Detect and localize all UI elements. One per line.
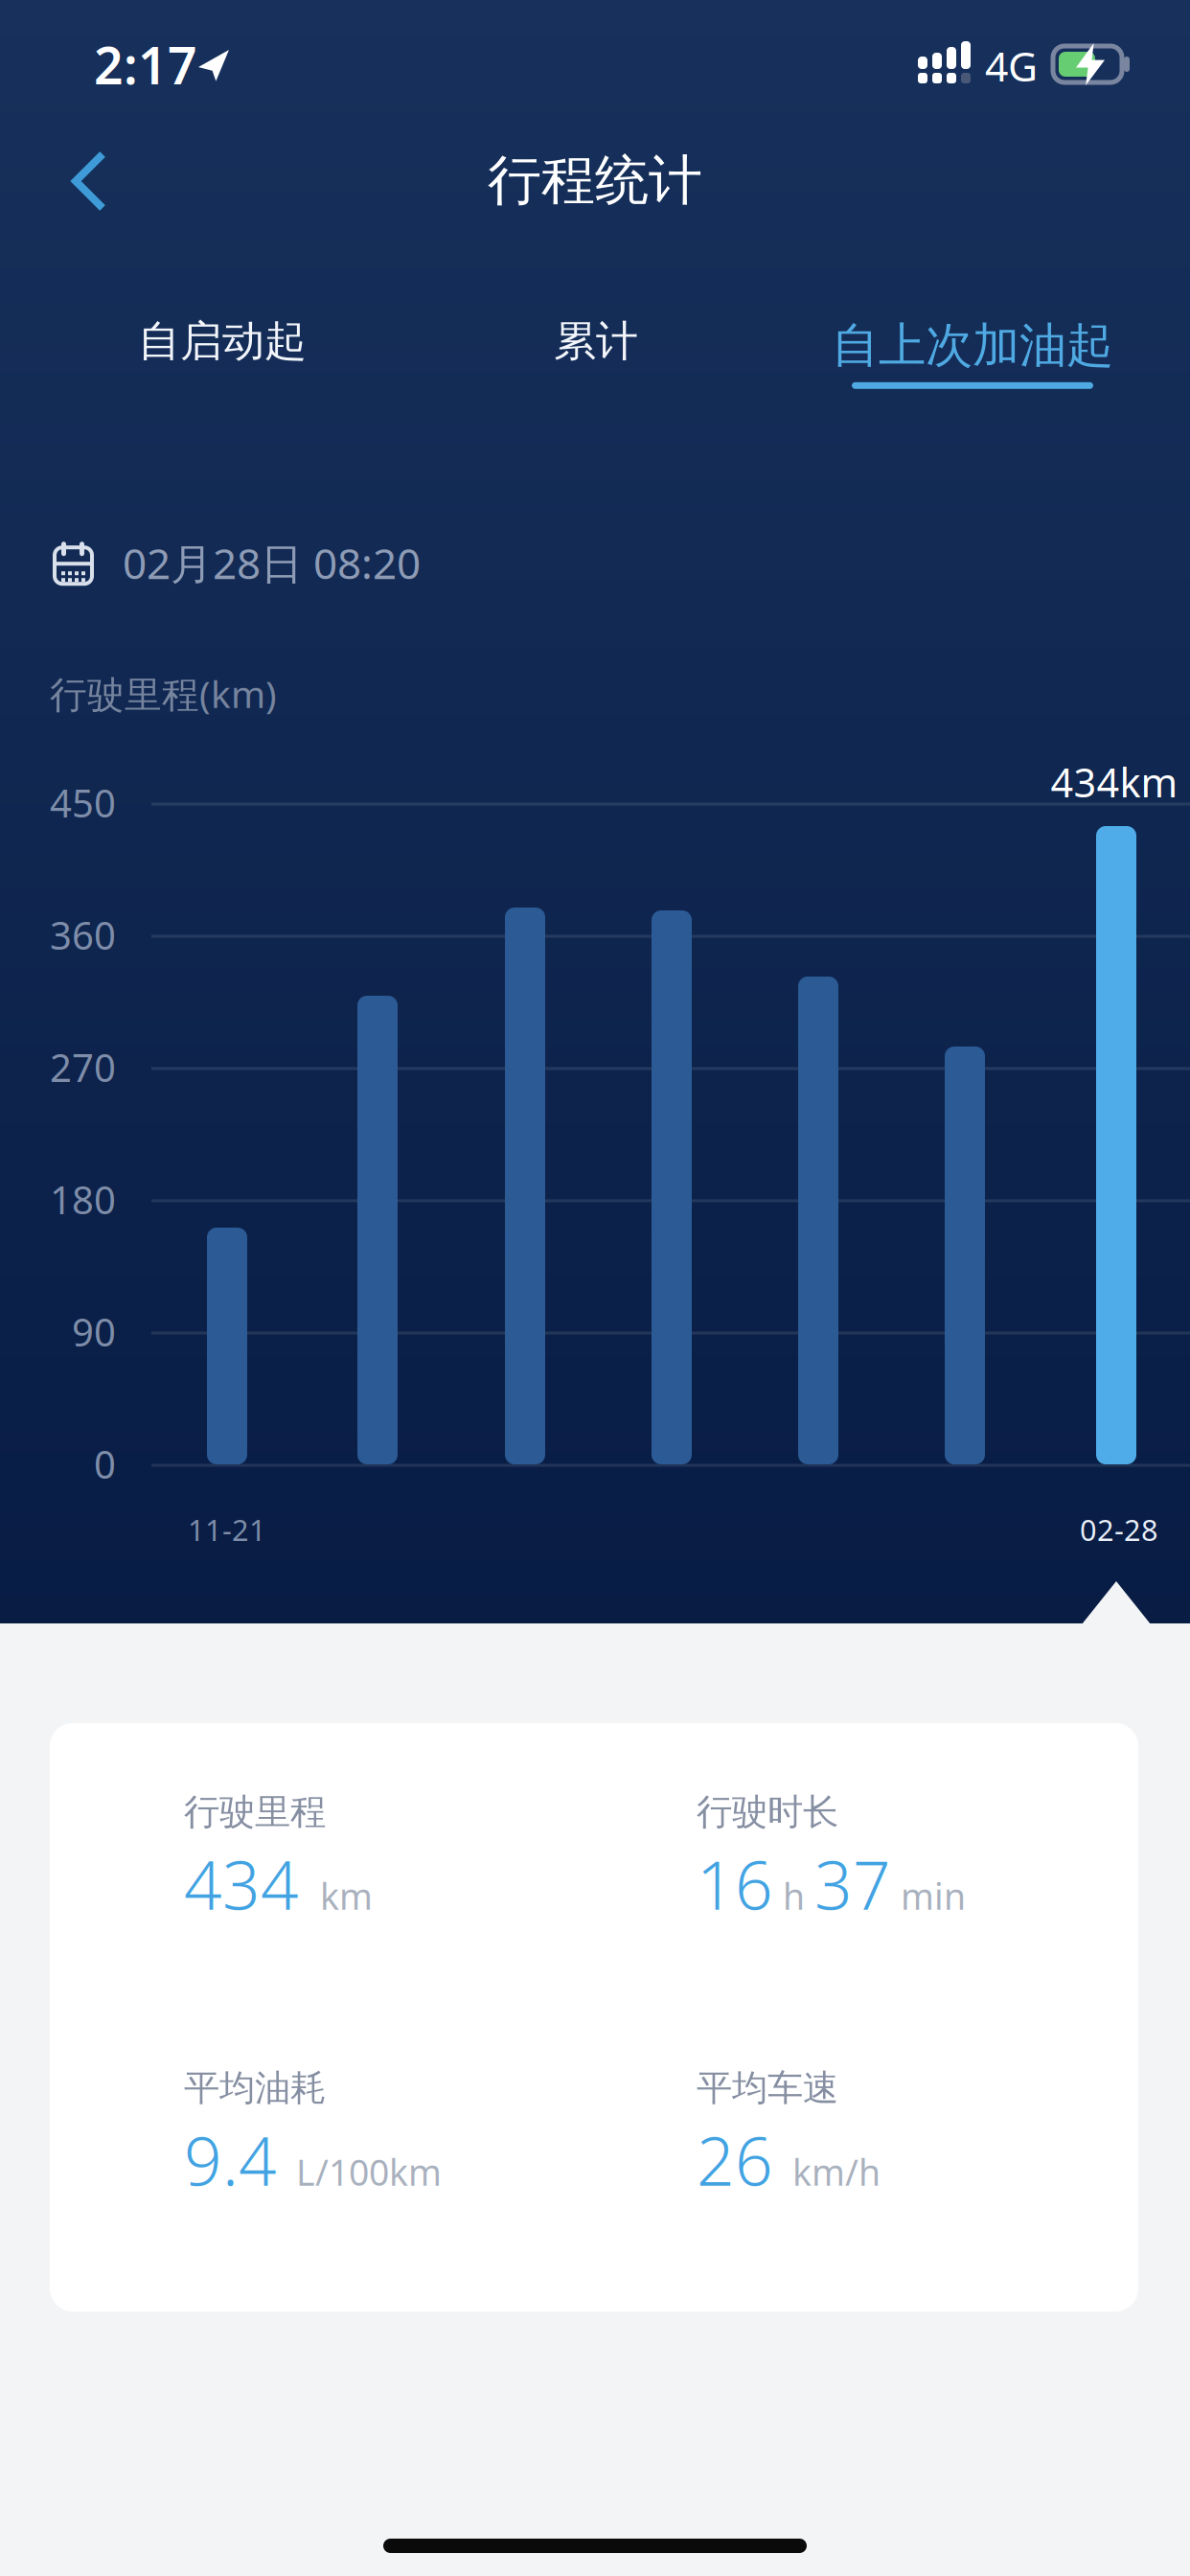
staticText: 行程统计 [488, 148, 702, 214]
button[interactable]: 里程柱 1 [207, 1228, 247, 1464]
staticText: 行驶时长 [697, 1790, 838, 1834]
button[interactable]: 里程柱 3 [505, 908, 545, 1464]
staticText: 434km [1051, 756, 1178, 808]
staticText: 37 [814, 1840, 891, 1928]
button[interactable]: 里程柱 2 [357, 996, 398, 1464]
button[interactable]: 自上次加油起 [824, 309, 1121, 397]
button[interactable]: 里程柱 5 [798, 977, 838, 1464]
staticText: 450 [50, 777, 116, 828]
staticText: min [901, 1872, 966, 1920]
button[interactable]: 累计 [542, 304, 650, 379]
staticText: 16 [697, 1840, 773, 1928]
staticText: 行驶里程 [184, 1790, 326, 1834]
staticText: 0 [94, 1438, 116, 1489]
button[interactable]: 选择日期 [55, 529, 421, 596]
staticText: 平均油耗 [184, 2066, 326, 2110]
staticText: 90 [72, 1306, 116, 1357]
staticText: km/h [792, 2148, 881, 2196]
staticText: 180 [50, 1174, 116, 1225]
button[interactable]: 自启动起 [126, 304, 318, 379]
staticText: 434 [184, 1840, 299, 1928]
staticText: 02月28日 08:20 [123, 535, 421, 591]
button[interactable]: 里程柱 7 [1096, 826, 1136, 1464]
staticText: h [783, 1872, 805, 1920]
staticText: 2:17 [94, 31, 197, 99]
staticText: 行驶里程(km) [50, 669, 277, 718]
staticText: 02-28 [1080, 1510, 1158, 1549]
staticText: 自上次加油起 [832, 316, 1113, 375]
staticText: 累计 [554, 315, 638, 367]
button[interactable]: 里程柱 6 [945, 1046, 985, 1464]
button[interactable]: 里程柱 4 [652, 910, 692, 1464]
staticText: 平均车速 [697, 2066, 838, 2110]
staticText: 26 [697, 2116, 773, 2204]
staticText: 4G [985, 38, 1038, 93]
staticText: km [320, 1872, 373, 1920]
staticText: 9.4 [184, 2116, 277, 2204]
staticText: 270 [50, 1042, 116, 1093]
button[interactable]: Back [47, 137, 131, 225]
staticText: 11-21 [188, 1510, 266, 1549]
staticText: 360 [50, 909, 116, 960]
staticText: L/100km [296, 2148, 442, 2196]
staticText: 自启动起 [138, 315, 307, 367]
